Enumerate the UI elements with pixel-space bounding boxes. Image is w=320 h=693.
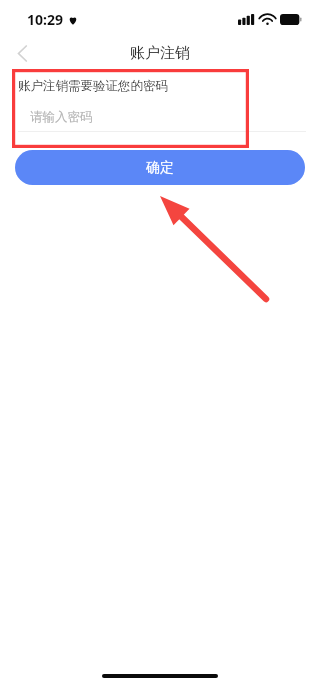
staticText: 账户注销 bbox=[130, 44, 190, 63]
staticText: 确定 bbox=[146, 159, 174, 177]
button[interactable]: 请输入密码 bbox=[0, 106, 320, 128]
staticText: 账户注销需要验证您的密码 bbox=[18, 78, 168, 94]
staticText: 10:29 bbox=[27, 10, 63, 29]
button[interactable]: 确定 bbox=[15, 150, 305, 185]
staticText: 请输入密码 bbox=[30, 109, 93, 125]
button[interactable]: Back bbox=[0, 38, 44, 69]
